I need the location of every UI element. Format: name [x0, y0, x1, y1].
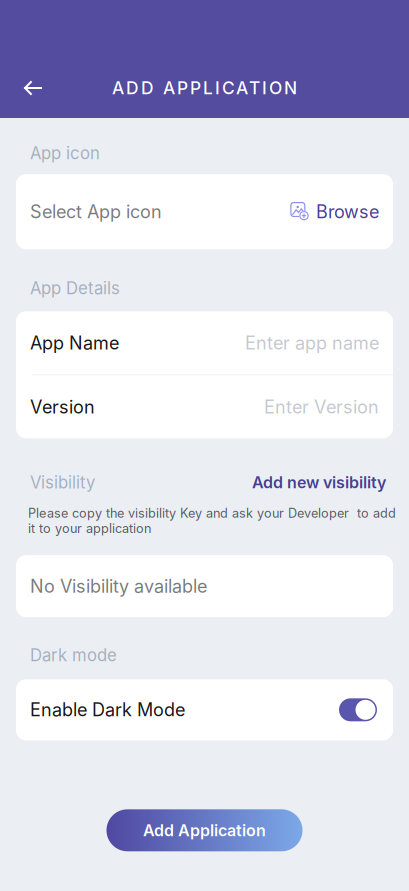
staticText: Enter Version [264, 396, 379, 418]
staticText: Browse [316, 201, 379, 223]
staticText: No Visibility available [30, 575, 207, 597]
staticText: Please copy the visibility Key and ask y… [28, 505, 396, 536]
staticText: Add Application [143, 821, 266, 840]
staticText: Enable Dark Mode [30, 699, 185, 721]
staticText: Version [30, 396, 95, 418]
staticText: Select App icon [30, 201, 162, 223]
staticText: ADD APPLICATION [112, 77, 297, 98]
staticText: Enter app name [245, 332, 379, 354]
button[interactable]: Back [0, 66, 67, 110]
button[interactable]: Add new visibility [252, 473, 386, 492]
staticText: Add new visibility [252, 473, 386, 492]
staticText: Visibility [30, 472, 95, 492]
staticText: Dark mode [30, 645, 117, 665]
button[interactable]: Select App icon [16, 174, 393, 249]
button[interactable]: Enable Dark Mode [16, 679, 393, 740]
staticText: App Details [30, 278, 120, 298]
staticText: App icon [30, 143, 100, 163]
staticText: App Name [30, 332, 119, 354]
button[interactable]: Add Application [106, 809, 302, 851]
